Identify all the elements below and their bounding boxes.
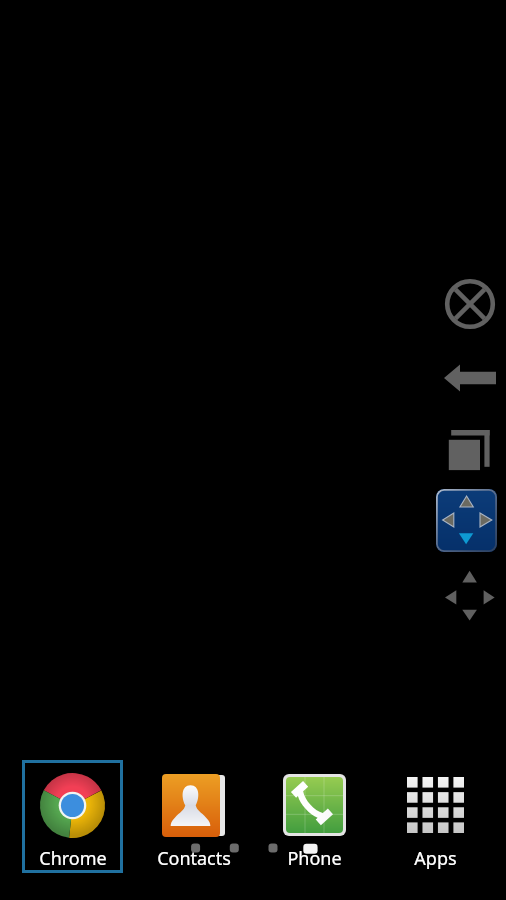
button[interactable]: Chrome (22, 760, 123, 873)
staticText: Apps (414, 846, 457, 871)
button[interactable]: Recent apps (444, 424, 496, 476)
button[interactable]: Close (444, 278, 496, 330)
button[interactable]: Contacts (143, 760, 244, 873)
staticText: Phone (287, 846, 342, 871)
button[interactable]: Move (443, 568, 497, 624)
button[interactable]: Back (440, 358, 500, 398)
staticText: Contacts (157, 846, 231, 871)
button[interactable]: Apps (385, 760, 486, 873)
button[interactable]: Direction pad (436, 489, 497, 552)
button[interactable]: Phone (264, 760, 365, 873)
staticText: Chrome (39, 846, 107, 871)
